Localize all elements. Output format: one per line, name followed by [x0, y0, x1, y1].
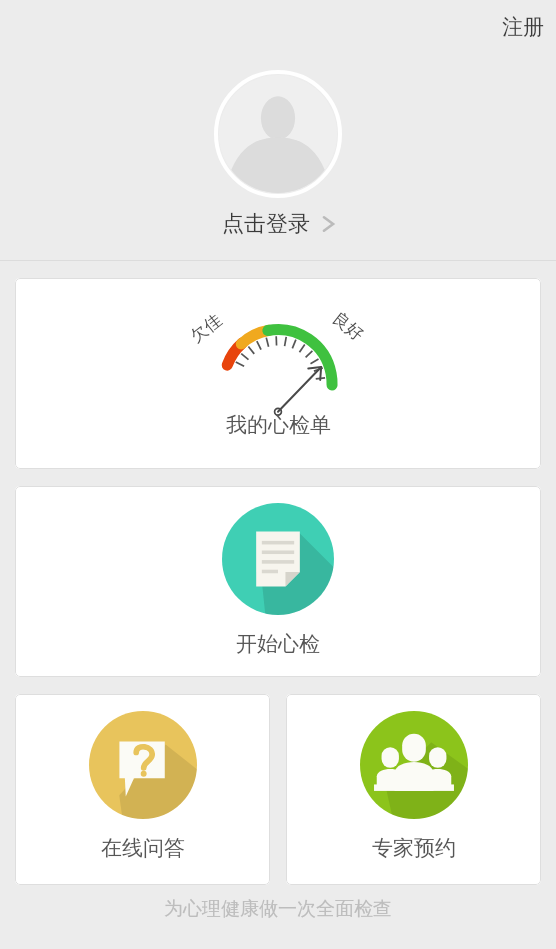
button[interactable]: 点击登录	[0, 54, 556, 260]
staticText: 专家预约	[372, 835, 456, 861]
staticText: 在线问答	[101, 835, 185, 861]
staticText: 点击登录	[222, 210, 310, 238]
staticText: 开始心检	[236, 631, 320, 657]
button[interactable]: 专家预约	[286, 694, 541, 885]
staticText: 我的心检单	[226, 412, 331, 438]
button[interactable]: 注册	[490, 8, 556, 46]
other: 在线问答	[89, 711, 197, 819]
staticText: 为心理健康做一次全面检查	[164, 897, 392, 921]
other: 专家预约	[360, 711, 468, 819]
staticText: 欠佳	[186, 310, 226, 347]
staticText: 注册	[502, 14, 544, 40]
button[interactable]: 欠佳	[15, 278, 541, 469]
button[interactable]: 在线问答	[15, 694, 270, 885]
staticText: 良好	[328, 308, 368, 345]
button[interactable]: 开始心检	[15, 486, 541, 677]
